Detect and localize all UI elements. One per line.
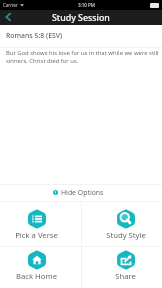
button[interactable]: Study Style	[81, 202, 162, 246]
staticText: 3:10 PM	[78, 2, 95, 8]
button[interactable]: Hide Options	[0, 185, 162, 201]
staticText: Share	[115, 271, 136, 281]
staticText: Romans 5:8 (ESV)	[6, 31, 63, 40]
staticText: Study Style	[106, 230, 146, 240]
button[interactable]: Share	[81, 247, 162, 288]
button[interactable]: Pick a Verse	[0, 202, 81, 246]
button[interactable]: Back Home	[0, 247, 81, 288]
staticText: Study Session	[52, 12, 110, 24]
staticText: Carrier	[3, 2, 18, 8]
staticText: But God shows his love for us in that wh…	[6, 49, 160, 65]
staticText: Hide Options	[61, 188, 104, 197]
staticText: Back Home	[16, 271, 57, 281]
staticText: Pick a Verse	[15, 230, 58, 240]
button[interactable]: Back	[1, 10, 15, 24]
